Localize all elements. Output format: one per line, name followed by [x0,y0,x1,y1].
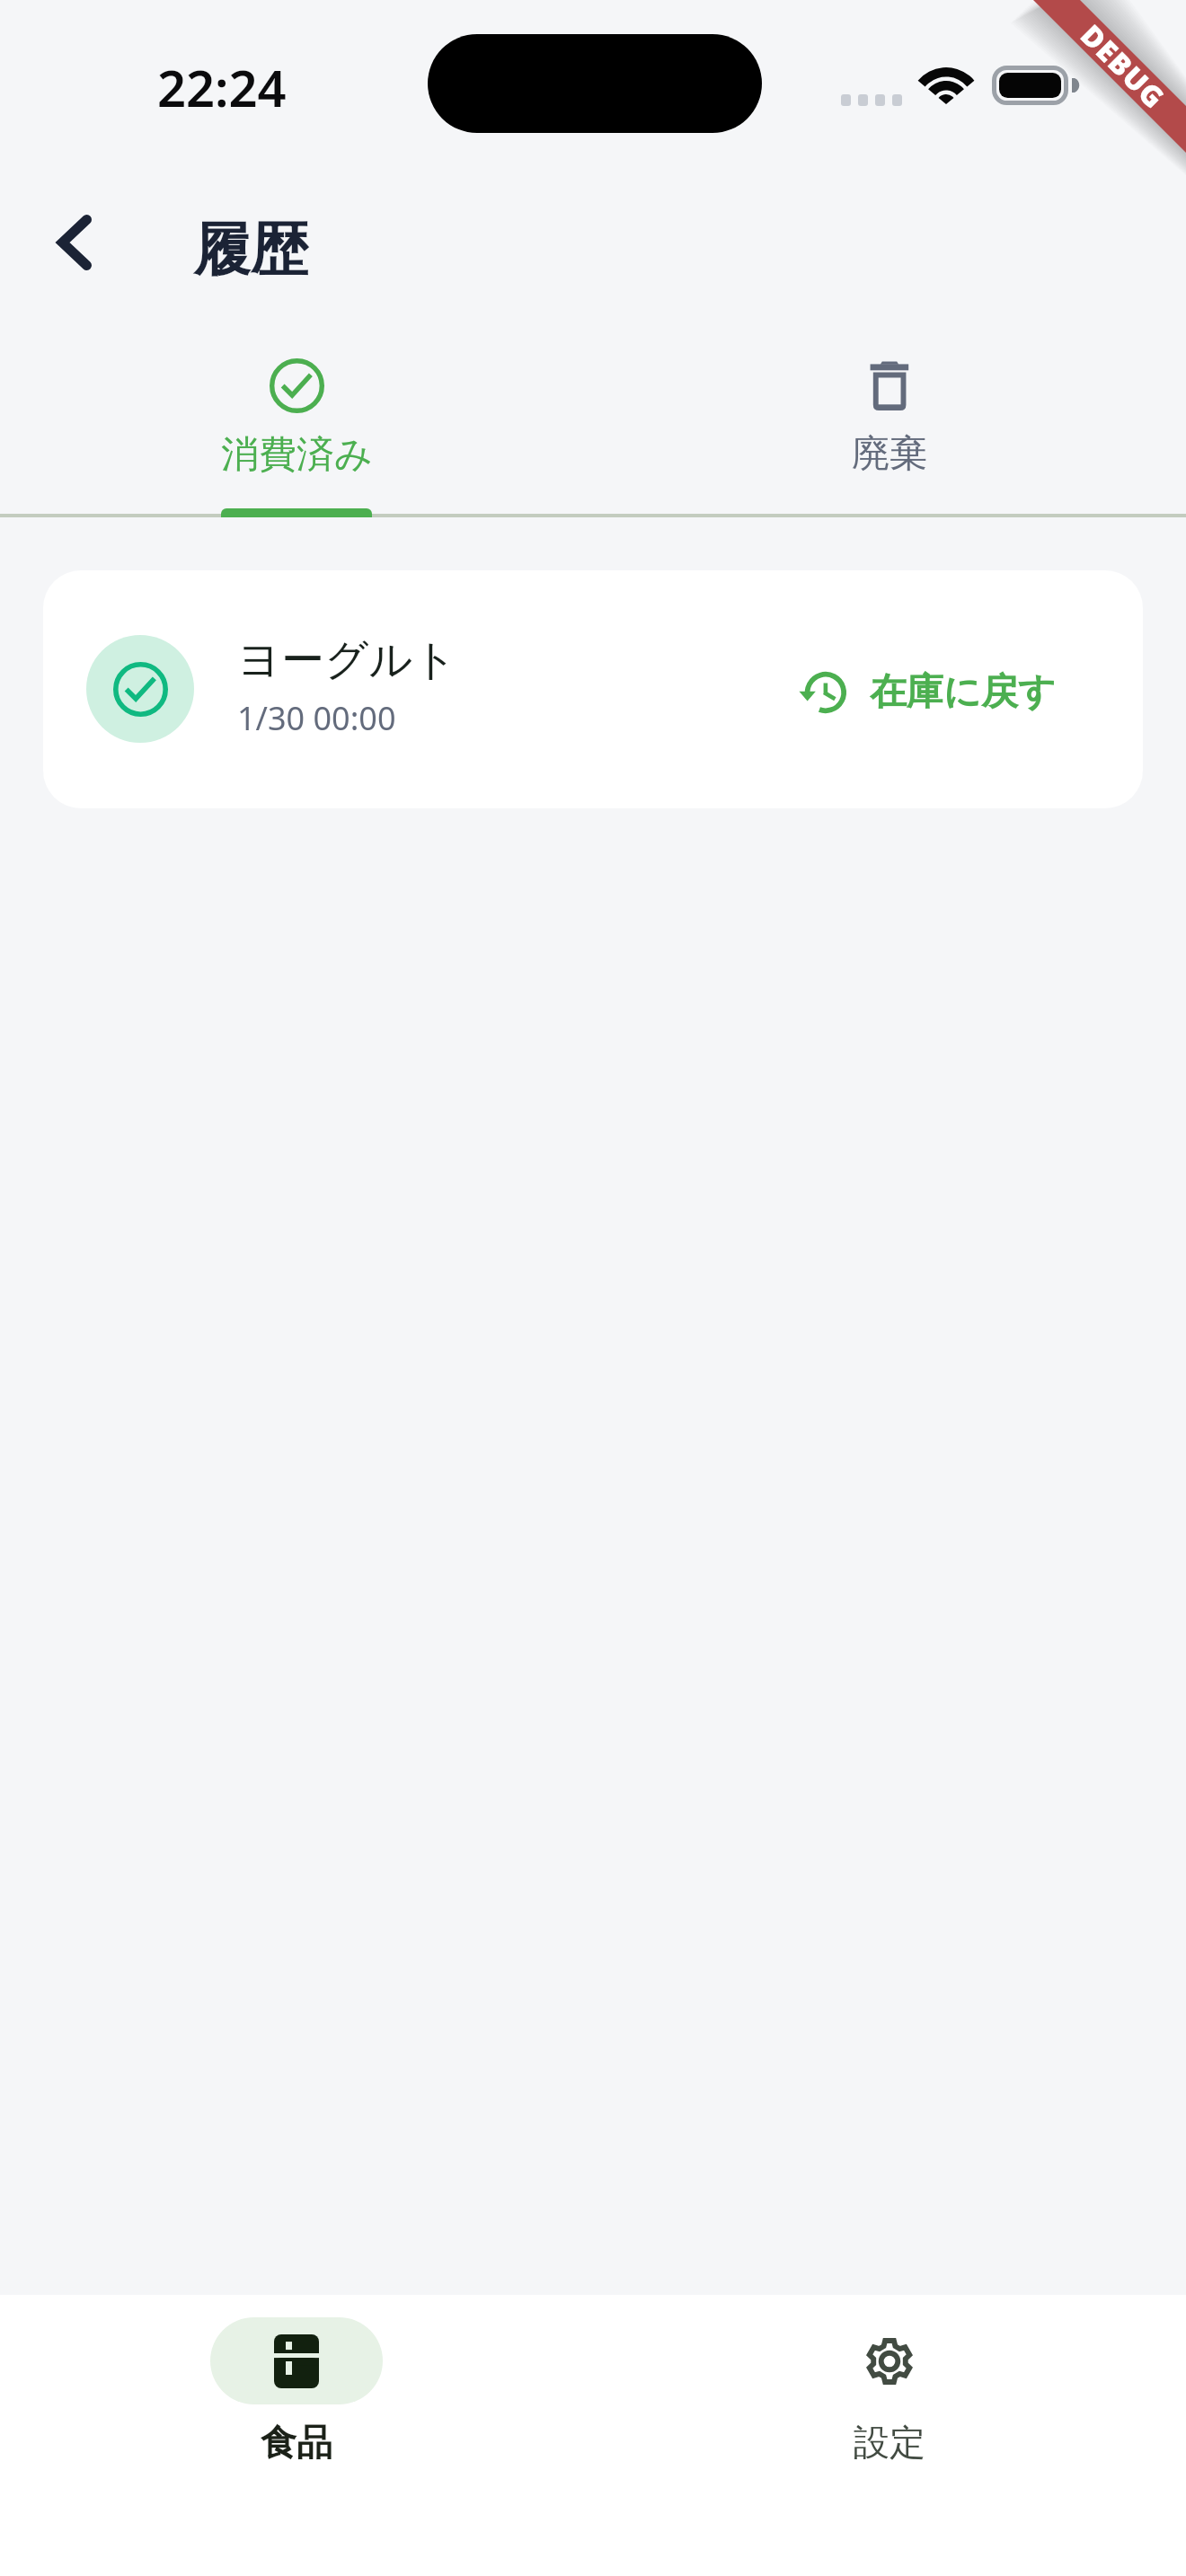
button[interactable]: Back [10,178,139,307]
staticText: 1/30 00:00 [237,696,396,740]
staticText: 食品 [261,2420,332,2461]
staticText: 履歴 [193,214,308,287]
button[interactable]: 在庫に戻す [787,652,1068,733]
staticText: 設定 [854,2420,925,2461]
staticText: DEBUG [1072,16,1174,117]
button[interactable]: ヨーグルト [43,570,1143,808]
button[interactable]: 廃棄 [593,332,1186,517]
button[interactable]: 設定 [593,2317,1186,2461]
staticText: 廃棄 [852,430,927,478]
staticText: 在庫に戻す [870,669,1056,716]
staticText: 消費済み [221,431,373,479]
staticText: ヨーグルト [237,633,457,687]
button[interactable]: 消費済み [0,332,593,517]
button[interactable]: 食品 [0,2317,593,2461]
staticText: 22:24 [157,53,287,121]
